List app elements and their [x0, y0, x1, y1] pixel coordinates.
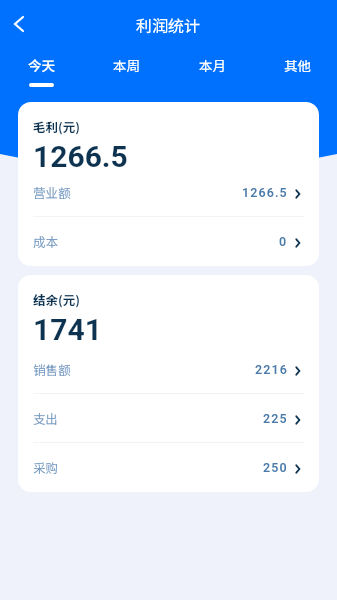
- staticText: 0: [279, 234, 288, 249]
- staticText: 本月: [199, 55, 226, 75]
- staticText: 其他: [284, 55, 311, 75]
- staticText: 利润统计: [136, 13, 201, 36]
- button[interactable]: 今天: [14, 48, 68, 90]
- button[interactable]: 销售额: [18, 345, 319, 394]
- staticText: 今天: [28, 55, 55, 75]
- staticText: 支出: [33, 409, 59, 427]
- button[interactable]: 营业额: [18, 168, 319, 217]
- button[interactable]: 本月: [185, 48, 239, 90]
- staticText: 毛利(元): [33, 117, 80, 135]
- button[interactable]: 采购: [18, 443, 319, 492]
- staticText: 250: [263, 460, 288, 475]
- button[interactable]: 支出: [18, 394, 319, 443]
- staticText: 营业额: [33, 183, 71, 201]
- staticText: 结余(元): [33, 290, 80, 308]
- staticText: 成本: [33, 232, 59, 250]
- button[interactable]: 成本: [18, 217, 319, 266]
- staticText: 225: [263, 411, 288, 426]
- button[interactable]: 其他: [270, 48, 324, 90]
- button[interactable]: Back: [0, 0, 38, 48]
- staticText: 1741: [33, 312, 102, 347]
- staticText: 1266.5: [33, 139, 128, 174]
- staticText: 销售额: [33, 360, 71, 378]
- staticText: 2216: [255, 362, 288, 377]
- staticText: 本周: [113, 55, 140, 75]
- staticText: 采购: [33, 458, 59, 476]
- button[interactable]: 本周: [99, 48, 153, 90]
- staticText: 1266.5: [242, 185, 288, 200]
